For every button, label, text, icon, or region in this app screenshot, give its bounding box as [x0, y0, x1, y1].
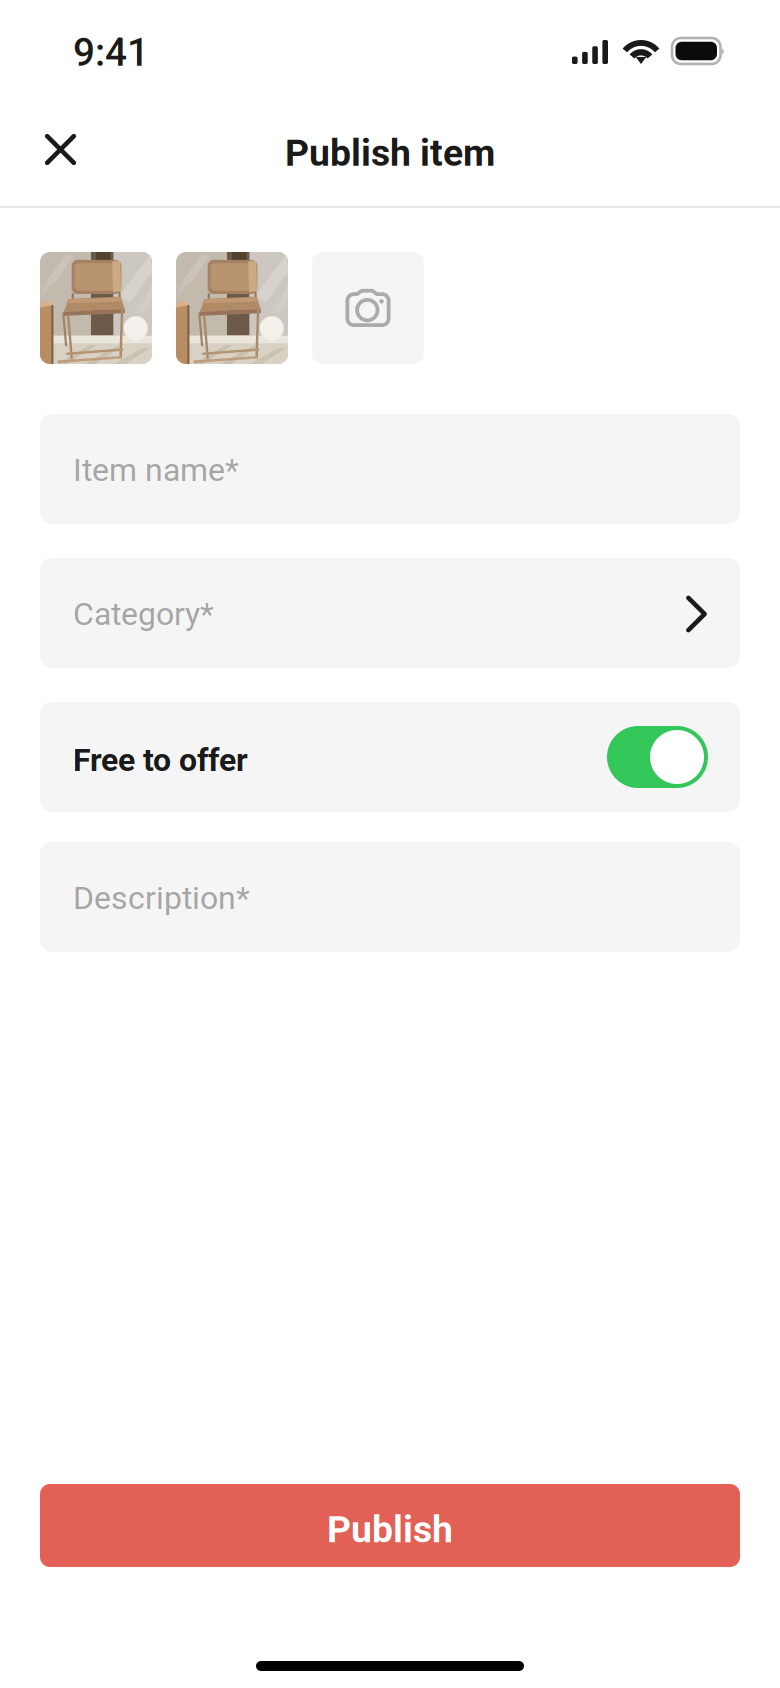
staticText: Description*: [73, 879, 250, 917]
staticText: Free to offer: [73, 741, 248, 779]
button[interactable]: Item name*: [40, 414, 740, 524]
button[interactable]: Add photo: [312, 252, 424, 364]
button[interactable]: Description*: [40, 842, 740, 952]
staticText: Category*: [73, 595, 214, 633]
button[interactable]: Free to offer: [40, 702, 740, 812]
staticText: Publish: [327, 1508, 453, 1551]
button[interactable]: Photo 2: [176, 252, 288, 364]
staticText: Item name*: [73, 451, 239, 489]
button[interactable]: Photo 1: [40, 252, 152, 364]
button[interactable]: Category*: [40, 558, 740, 668]
button[interactable]: Publish: [40, 1484, 740, 1567]
button[interactable]: Close: [21, 110, 100, 189]
staticText: 9:41: [73, 30, 149, 75]
staticText: Publish item: [285, 131, 495, 175]
